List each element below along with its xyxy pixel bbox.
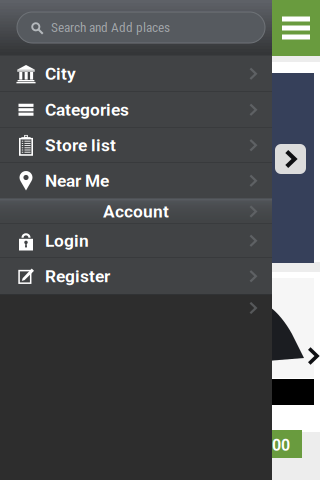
staticText: Store list [45, 135, 116, 155]
button[interactable]: Register [0, 258, 272, 294]
staticText: Categories [45, 100, 129, 120]
staticText: Login [45, 231, 89, 251]
staticText: City [45, 64, 76, 84]
staticText: Near Me [45, 171, 109, 191]
button[interactable]: Store list [0, 127, 272, 163]
button[interactable]: Categories [0, 92, 272, 127]
button[interactable]: Login [0, 223, 272, 258]
staticText: Register [45, 266, 110, 286]
button[interactable]: City [0, 55, 272, 92]
button[interactable]: Next [302, 344, 320, 368]
button[interactable]: Next image [275, 144, 306, 174]
button[interactable]: Search and Add places [17, 12, 265, 43]
button[interactable]: Account [0, 198, 272, 224]
staticText: Search and Add places [51, 20, 170, 35]
staticText: Account [103, 201, 169, 222]
button[interactable]: Menu [272, 0, 320, 56]
staticText: 00 [272, 436, 290, 455]
button[interactable]: Near Me [0, 163, 272, 198]
